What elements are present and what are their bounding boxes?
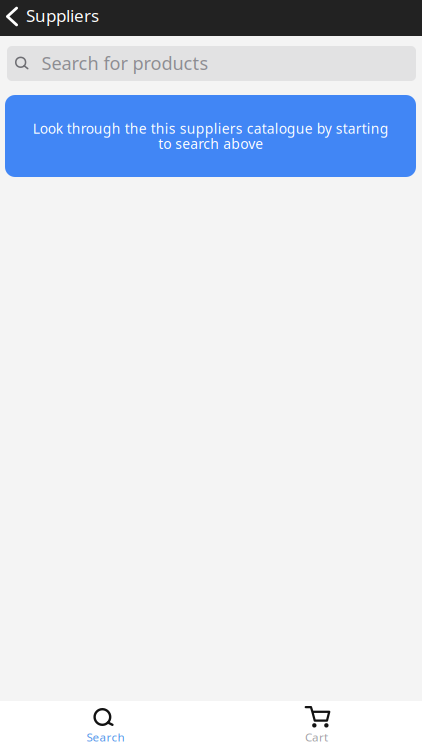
staticText: Search [86,729,124,745]
button[interactable]: Suppliers [0,0,111,36]
staticText: Suppliers [26,4,99,27]
button[interactable]: Search for products [7,46,416,81]
staticText: Search for products [41,51,208,75]
button[interactable]: Search [0,701,211,750]
button[interactable]: Cart [211,701,422,750]
staticText: Look through the this suppliers catalogu… [32,119,388,153]
staticText: Cart [305,729,328,745]
